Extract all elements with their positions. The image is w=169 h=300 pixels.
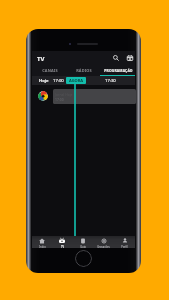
button[interactable]: Guia [72, 236, 93, 248]
staticText: Perfil [121, 245, 128, 248]
button[interactable]: Schedule [124, 52, 135, 63]
button[interactable]: Início [32, 236, 52, 248]
button[interactable]: Jornal Hoje [53, 89, 136, 104]
staticText: 17:00 [53, 78, 64, 84]
button[interactable]: CANAIS [32, 64, 67, 76]
staticText: Gravações [97, 245, 110, 248]
staticText: CANAIS [42, 68, 58, 73]
button[interactable]: Gravações [93, 236, 114, 248]
button[interactable]: RÁDIOS [67, 64, 101, 76]
staticText: PROGRAMAÇÃO [104, 68, 133, 73]
button[interactable]: Search [110, 52, 121, 63]
staticText: TV [61, 245, 64, 248]
staticText: RÁDIOS [76, 68, 92, 73]
staticText: TV [37, 55, 45, 63]
button[interactable]: Globo [38, 91, 48, 101]
staticText: 17:00 [55, 97, 64, 102]
staticText: Guia [80, 245, 86, 248]
button[interactable]: Perfil [114, 236, 135, 248]
staticText: Hoje [39, 78, 49, 84]
staticText: Início [39, 245, 46, 248]
button[interactable]: PROGRAMAÇÃO [101, 64, 135, 76]
staticText: 17:30 [105, 78, 116, 84]
staticText: AGORA [69, 78, 84, 83]
button[interactable]: TV [52, 236, 72, 248]
